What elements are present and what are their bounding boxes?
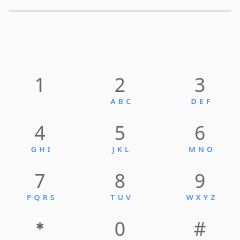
staticText: 5: [80, 120, 160, 146]
staticText: ABC: [82, 96, 162, 106]
button[interactable]: Dial 6: [160, 109, 240, 157]
staticText: GHI: [2, 144, 82, 154]
staticText: 1: [0, 72, 80, 98]
button[interactable]: Dial 8: [80, 157, 160, 205]
staticText: TUV: [82, 192, 162, 202]
staticText: WXYZ: [162, 192, 240, 202]
button[interactable]: Dial 0: [80, 205, 160, 240]
button[interactable]: Dial 2: [80, 61, 160, 109]
staticText: DEF: [162, 96, 240, 106]
staticText: 6: [160, 120, 240, 146]
staticText: 2: [80, 72, 160, 98]
button[interactable]: Dial 7: [0, 157, 80, 205]
button[interactable]: Dial 9: [160, 157, 240, 205]
staticText: 4: [0, 120, 80, 146]
button[interactable]: Dial *: [0, 205, 80, 240]
staticText: 0: [80, 216, 160, 240]
button[interactable]: Dial #: [160, 205, 240, 240]
staticText: 8: [80, 168, 160, 194]
button[interactable]: Dial 5: [80, 109, 160, 157]
staticText: 9: [160, 168, 240, 194]
staticText: PQRS: [2, 192, 82, 202]
staticText: MNO: [162, 144, 240, 154]
button[interactable]: Dial 1: [0, 61, 80, 109]
button[interactable]: Dial 4: [0, 109, 80, 157]
staticText: #: [160, 216, 240, 240]
staticText: 3: [160, 72, 240, 98]
button[interactable]: Dial 3: [160, 61, 240, 109]
staticText: 7: [0, 168, 80, 194]
staticText: JKL: [82, 144, 162, 154]
